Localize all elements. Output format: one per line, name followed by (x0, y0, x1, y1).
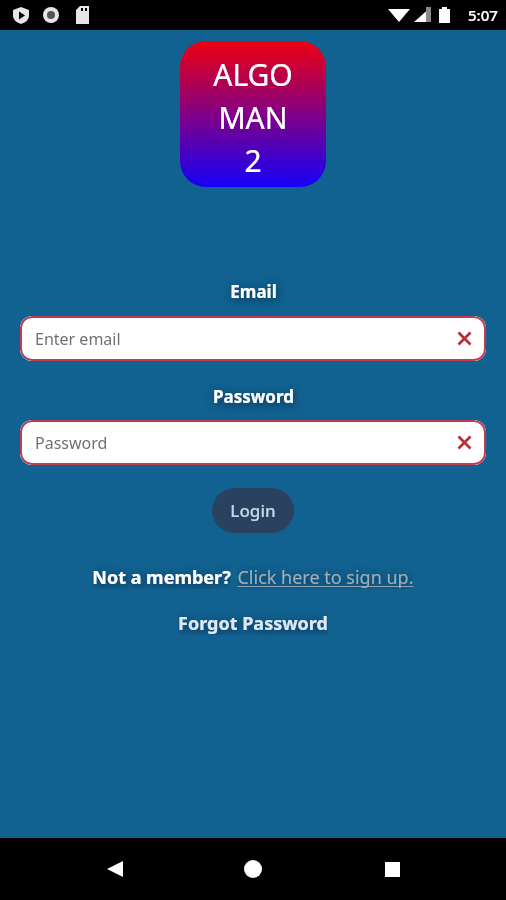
staticText: Not a member? (92, 565, 231, 589)
staticText: Password (213, 385, 294, 408)
button[interactable] (229, 845, 277, 893)
button[interactable]: Forgot Password (178, 611, 328, 635)
staticText: Login (230, 499, 276, 522)
button[interactable] (368, 845, 416, 893)
button[interactable]: Password (20, 420, 486, 465)
staticText: ALGO (213, 54, 293, 95)
button[interactable]: Enter email (20, 316, 486, 361)
button[interactable] (91, 845, 139, 893)
staticText: 2 (244, 140, 262, 181)
staticText: Email (230, 280, 277, 303)
button[interactable]: Login (212, 488, 294, 533)
staticText: Enter email (35, 328, 121, 350)
staticText: Password (35, 432, 108, 454)
staticText: 5:07 (468, 5, 498, 25)
button[interactable]: Click here to sign up. (237, 565, 414, 589)
staticText: MAN (218, 97, 288, 138)
